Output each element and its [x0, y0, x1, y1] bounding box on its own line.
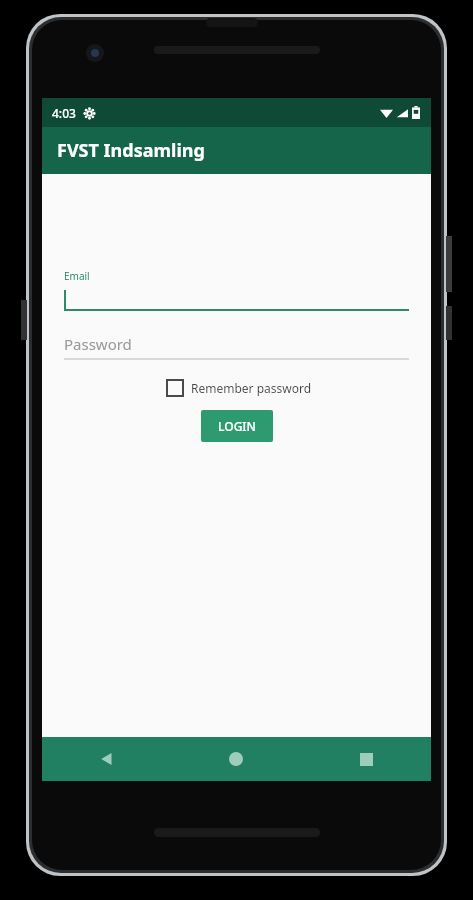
staticText: Remember password — [191, 380, 312, 396]
button[interactable]: Remember password — [167, 380, 312, 396]
staticText: 4:03 — [52, 105, 76, 121]
button[interactable]: Email — [64, 269, 409, 311]
button[interactable]: Recent apps — [301, 737, 431, 781]
staticText: Email — [64, 269, 90, 283]
button[interactable]: LOGIN — [201, 410, 273, 442]
staticText: LOGIN — [218, 418, 256, 434]
staticText: FVST Indsamling — [57, 138, 205, 163]
button[interactable]: Password — [64, 333, 409, 360]
staticText: Password — [64, 334, 132, 354]
button[interactable]: Home — [171, 737, 301, 781]
button[interactable]: Back — [42, 737, 171, 781]
